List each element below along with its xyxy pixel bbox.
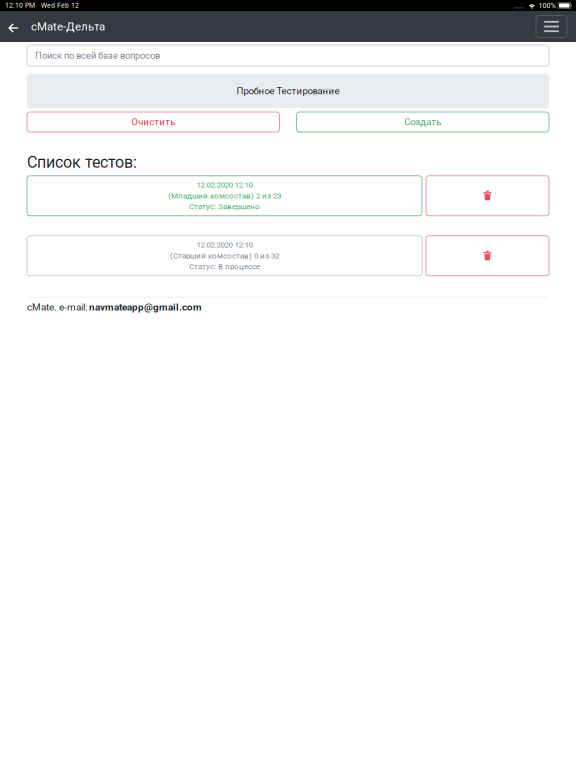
staticText: 12.02.2020 12:10 <box>196 180 252 190</box>
button[interactable]: Удалить тест <box>426 236 549 276</box>
staticText: navmateapp@gmail.com <box>89 301 202 313</box>
button[interactable]: Поиск по всей базе вопросов <box>27 45 549 66</box>
button[interactable]: Создать <box>296 112 549 132</box>
button[interactable]: Удалить тест <box>426 176 549 216</box>
staticText: Создать <box>404 116 441 128</box>
staticText: Статус: Завершено <box>189 202 260 211</box>
staticText: (Младший комсостав) 2 из 23 <box>168 191 281 200</box>
staticText: Статус: В процессе <box>189 262 260 271</box>
button[interactable]: 12.02.2020 12:10 <box>27 236 422 276</box>
staticText: cMate. e-mail: <box>27 301 89 313</box>
staticText: 100% <box>538 1 555 10</box>
staticText: 12.02.2020 12:10 <box>196 240 252 250</box>
staticText: Wed Feb 12 <box>41 1 79 9</box>
button[interactable]: Назад <box>5 11 27 42</box>
staticText: Список тестов: <box>27 153 137 172</box>
button[interactable]: 12.02.2020 12:10 <box>27 176 422 216</box>
button[interactable]: Очистить <box>27 112 279 132</box>
staticText: Поиск по всей базе вопросов <box>35 50 160 61</box>
staticText: Пробное Тестирование <box>236 85 339 97</box>
button[interactable]: Меню <box>536 15 567 37</box>
staticText: Очистить <box>131 116 175 128</box>
staticText: cMate-Дельта <box>31 20 105 33</box>
staticText: (Старший комсостав) 0 из 32 <box>170 251 279 260</box>
staticText: 12:10 PM <box>5 1 35 9</box>
